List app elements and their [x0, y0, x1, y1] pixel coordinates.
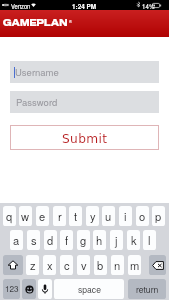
staticText: b: [97, 257, 104, 273]
button[interactable]: u: [102, 206, 115, 226]
staticText: u: [105, 208, 112, 224]
button[interactable]: v: [77, 255, 90, 275]
button[interactable]: w: [19, 206, 32, 226]
button[interactable]: y: [86, 206, 99, 226]
staticText: 1:24 PM: [72, 2, 97, 11]
staticText: i: [124, 208, 127, 224]
staticText: q: [6, 208, 13, 224]
staticText: j: [115, 232, 118, 248]
staticText: t: [74, 208, 78, 224]
button[interactable]: k: [127, 230, 140, 250]
button[interactable]: d: [44, 230, 57, 250]
button[interactable]: l: [143, 230, 156, 250]
staticText: m: [130, 257, 140, 273]
staticText: e: [39, 208, 46, 224]
staticText: s: [31, 232, 37, 248]
staticText: g: [80, 232, 87, 248]
button[interactable]: f: [60, 230, 73, 250]
button[interactable]: Username: [10, 61, 159, 83]
staticText: h: [96, 232, 103, 248]
staticText: f: [65, 232, 69, 248]
staticText: z: [30, 257, 36, 273]
button[interactable]: b: [94, 255, 107, 275]
staticText: p: [155, 208, 162, 224]
button[interactable]: Emoji keyboard: [22, 279, 36, 299]
button[interactable]: Shift: [3, 255, 23, 275]
staticText: y: [90, 208, 96, 224]
staticText: return: [136, 283, 159, 295]
staticText: w: [21, 208, 30, 224]
staticText: o: [139, 208, 146, 224]
button[interactable]: Password: [10, 91, 159, 113]
staticText: Password: [16, 95, 58, 109]
button[interactable]: g: [77, 230, 90, 250]
button[interactable]: h: [93, 230, 106, 250]
staticText: n: [114, 257, 121, 273]
staticText: c: [64, 257, 70, 273]
staticText: space: [78, 283, 101, 295]
button[interactable]: t: [69, 206, 82, 226]
button[interactable]: q: [3, 206, 16, 226]
button[interactable]: p: [152, 206, 165, 226]
staticText: v: [81, 257, 87, 273]
button[interactable]: r: [53, 206, 66, 226]
staticText: Submit: [62, 132, 108, 146]
button[interactable]: j: [110, 230, 123, 250]
staticText: r: [58, 208, 62, 224]
button[interactable]: n: [111, 255, 124, 275]
staticText: x: [47, 257, 53, 273]
staticText: 123: [5, 283, 19, 295]
staticText: Username: [15, 65, 59, 79]
staticText: GAMEPLAN: [3, 18, 68, 29]
button[interactable]: Backspace: [149, 255, 166, 275]
button[interactable]: c: [60, 255, 73, 275]
staticText: k: [131, 232, 137, 248]
button[interactable]: s: [27, 230, 40, 250]
button[interactable]: e: [36, 206, 49, 226]
staticText: Verizon: [11, 2, 31, 10]
button[interactable]: x: [43, 255, 56, 275]
button[interactable]: return: [128, 279, 166, 299]
button[interactable]: space: [54, 279, 124, 299]
button[interactable]: 123: [3, 279, 20, 299]
staticText: ®: [69, 18, 72, 24]
button[interactable]: m: [128, 255, 141, 275]
button[interactable]: a: [10, 230, 23, 250]
button[interactable]: i: [119, 206, 132, 226]
staticText: d: [47, 232, 54, 248]
staticText: a: [13, 232, 20, 248]
staticText: 14%: [142, 2, 155, 11]
button[interactable]: Submit: [10, 125, 159, 150]
button[interactable]: o: [136, 206, 149, 226]
button[interactable]: z: [26, 255, 39, 275]
staticText: l: [148, 232, 151, 248]
button[interactable]: Dictation: [38, 279, 52, 299]
